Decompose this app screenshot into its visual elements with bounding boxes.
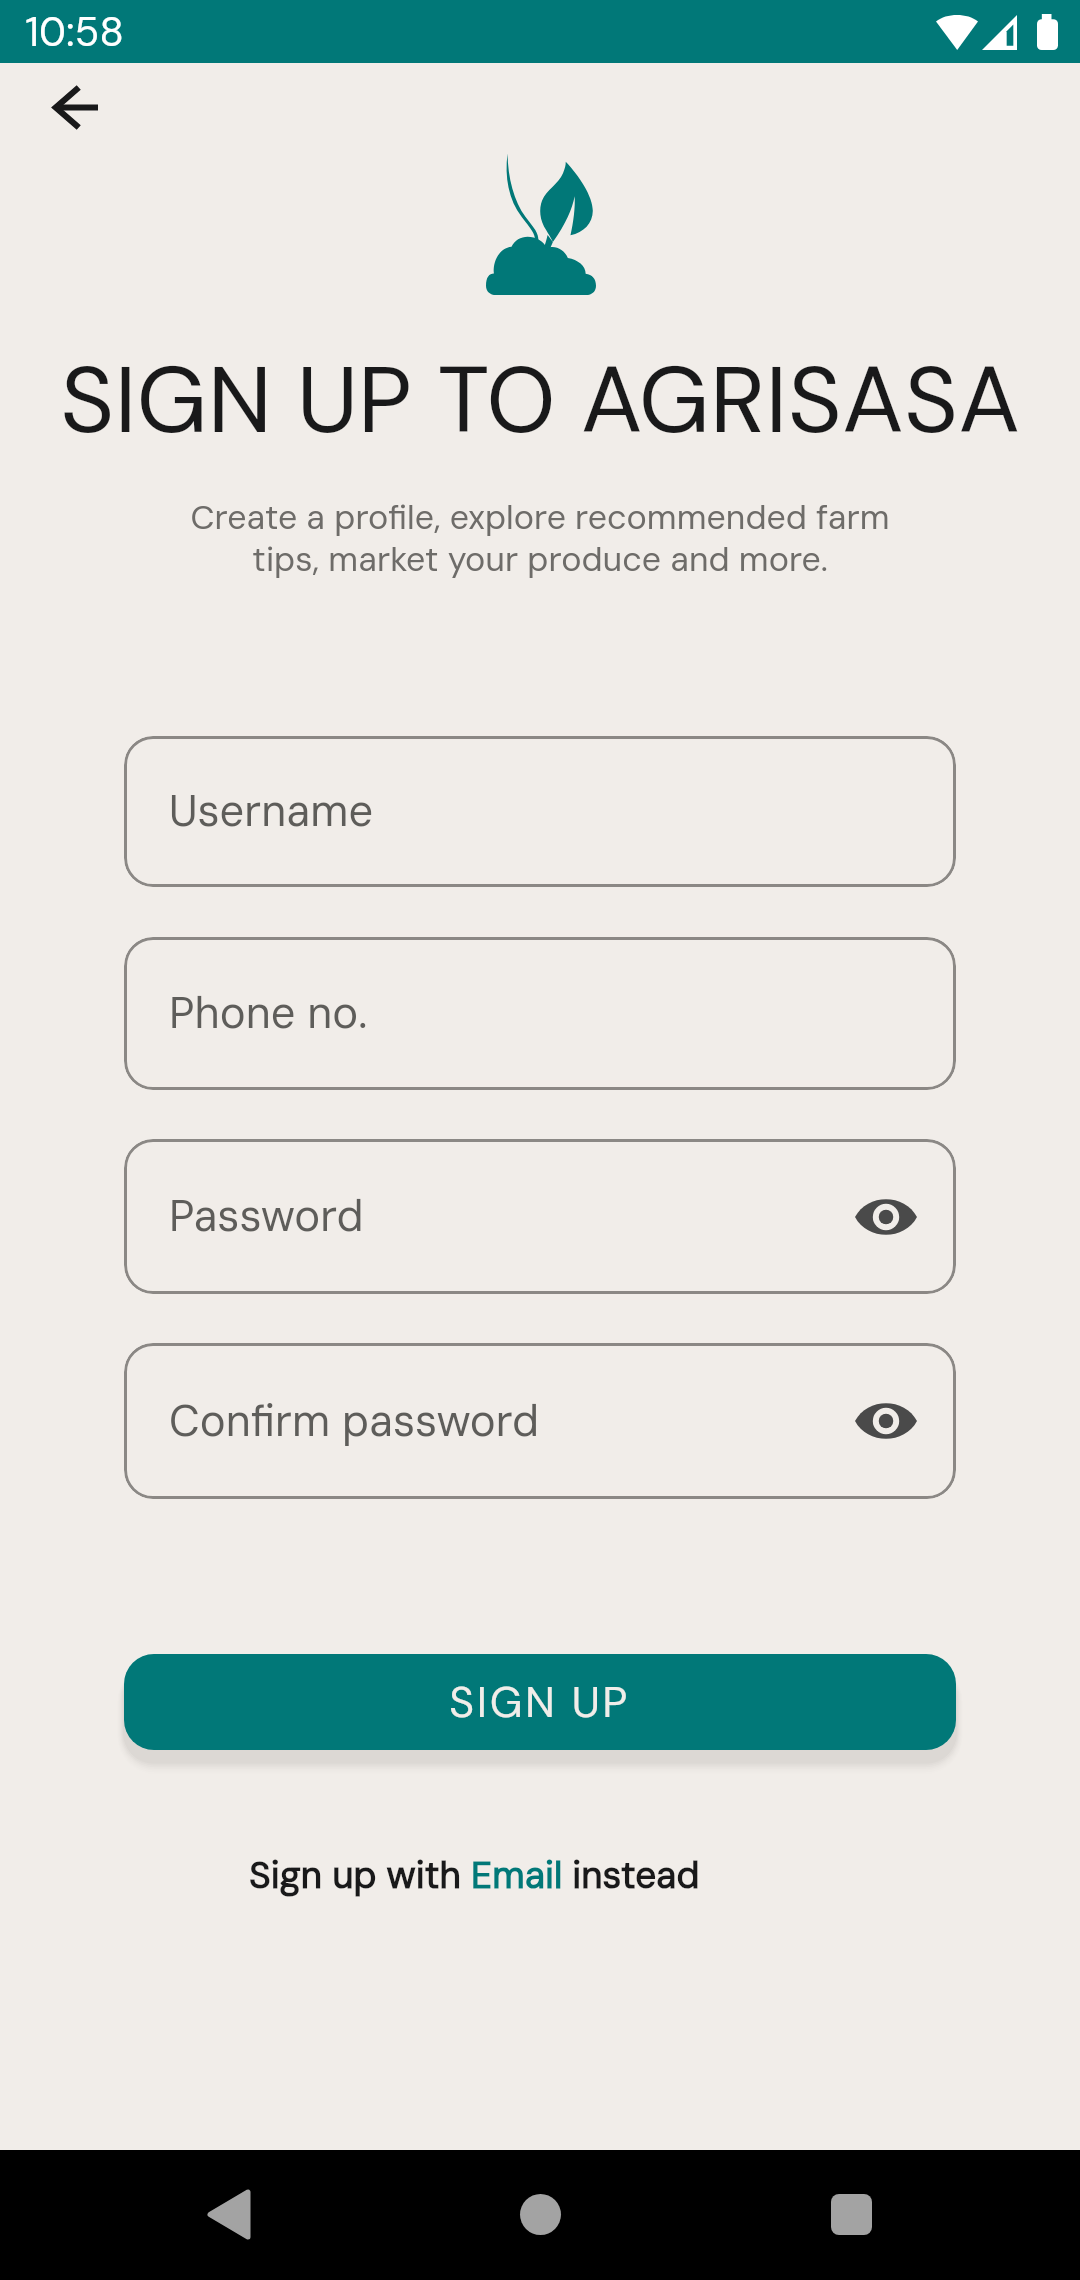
staticText: Phone no. [169, 985, 368, 1042]
button[interactable]: Password [124, 1139, 956, 1294]
staticText: SIGN UP [449, 1674, 631, 1730]
button[interactable]: Back [189, 2174, 269, 2254]
staticText: SIGN UP TO AGRISASA [0, 340, 1080, 461]
staticText: Password [169, 1188, 364, 1245]
button[interactable]: Sign up with Email instead [239, 1843, 710, 1907]
button[interactable]: Confirm password [124, 1343, 956, 1499]
staticText: Sign up with Email instead [249, 1851, 700, 1899]
staticText: 10:58 [25, 5, 125, 58]
button[interactable]: Show password [852, 1387, 920, 1455]
button[interactable]: SIGN UP [124, 1654, 956, 1750]
button[interactable]: Username [124, 736, 956, 887]
button[interactable]: Phone no. [124, 937, 956, 1090]
button[interactable]: Show password [852, 1183, 920, 1251]
staticText: Create a profile, explore recommended fa… [0, 495, 1080, 582]
button[interactable]: Recent apps [811, 2174, 891, 2254]
staticText: Confirm password [169, 1393, 539, 1450]
button[interactable]: Home [500, 2174, 580, 2254]
button[interactable]: Back [27, 59, 123, 155]
staticText: Username [169, 783, 374, 840]
